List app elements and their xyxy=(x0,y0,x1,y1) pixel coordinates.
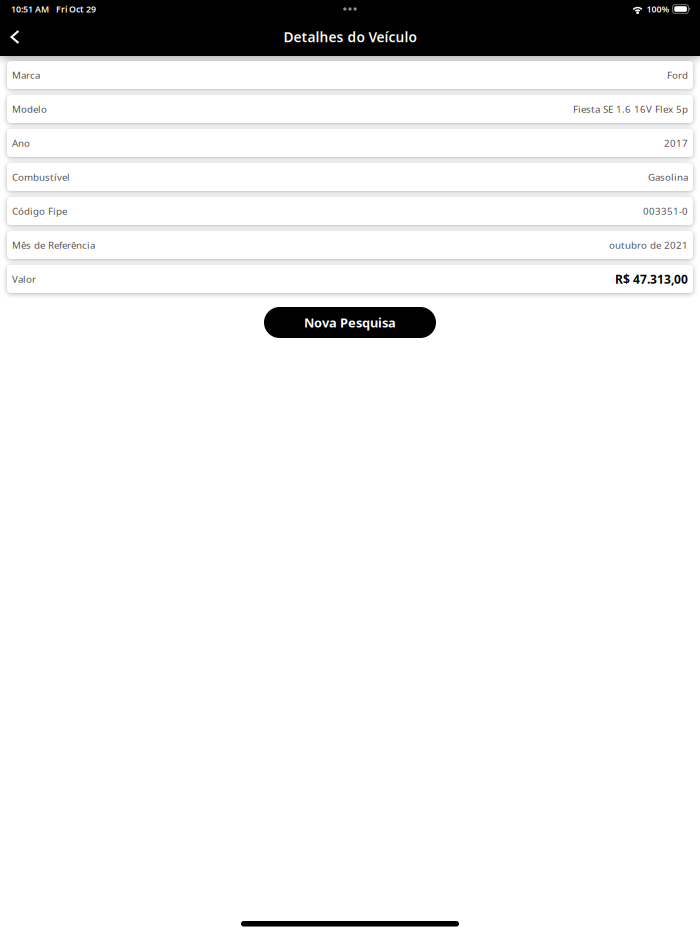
staticText: Combustível xyxy=(12,170,70,184)
staticText: Fiesta SE 1.6 16V Flex 5p xyxy=(573,102,688,116)
staticText: outubro de 2021 xyxy=(609,238,688,252)
staticText: Nova Pesquisa xyxy=(304,314,396,331)
staticText: Mês de Referência xyxy=(12,238,95,252)
staticText: Gasolina xyxy=(648,170,688,184)
staticText: Ford xyxy=(667,68,688,82)
staticText: Modelo xyxy=(12,102,47,116)
staticText: 10:51 AM xyxy=(11,3,49,15)
staticText: Valor xyxy=(12,272,36,286)
staticText: Fri Oct 29 xyxy=(56,3,96,15)
button[interactable]: Back xyxy=(0,18,30,56)
staticText: Código Fipe xyxy=(12,204,67,218)
staticText: Detalhes do Veículo xyxy=(283,28,416,46)
staticText: Marca xyxy=(12,68,40,82)
staticText: 2017 xyxy=(664,136,688,150)
staticText: 100% xyxy=(647,3,670,15)
button[interactable]: Nova Pesquisa xyxy=(264,307,436,338)
staticText: Ano xyxy=(12,136,30,150)
staticText: R$ 47.313,00 xyxy=(615,271,688,287)
staticText: 003351-0 xyxy=(643,204,688,218)
